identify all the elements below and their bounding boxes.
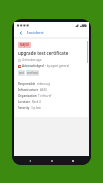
staticText: Rack 4 [32, 100, 41, 104]
button[interactable]: Location [18, 99, 85, 105]
staticText: 3 p-low [31, 106, 41, 110]
staticText: MAJOR [20, 43, 29, 47]
button[interactable]: test [18, 70, 25, 76]
staticText: Incident [27, 30, 44, 36]
staticText: • by agent.general [45, 64, 69, 68]
button[interactable]: Back [27, 158, 33, 164]
staticText: Acknowledged [22, 64, 44, 68]
staticText: upgrade test certificate [18, 50, 69, 56]
staticText: 4 minutes ago [22, 58, 42, 62]
button[interactable]: Infrastructure [18, 87, 85, 93]
staticText: Responsible [18, 82, 36, 86]
button[interactable]: Back [17, 29, 24, 36]
staticText: rebecca.g [37, 82, 51, 86]
button[interactable]: Recent apps [70, 158, 76, 164]
staticText: Organisation [18, 94, 37, 98]
button[interactable]: Severity [18, 105, 85, 111]
staticText: T infra-ref [38, 94, 52, 98]
button[interactable]: MAJOR [18, 42, 31, 48]
button[interactable]: Responsible [18, 81, 85, 87]
staticText: AS43 [40, 88, 47, 92]
staticText: Location [18, 100, 31, 104]
button[interactable]: cert host [26, 70, 39, 76]
staticText: Severity [18, 106, 30, 110]
staticText: Infrastructure [18, 88, 39, 92]
staticText: test [19, 71, 24, 75]
staticText: A [19, 65, 21, 68]
button[interactable]: Organisation [18, 93, 85, 99]
staticText: cert host [27, 71, 38, 75]
button[interactable]: Home [49, 158, 55, 164]
